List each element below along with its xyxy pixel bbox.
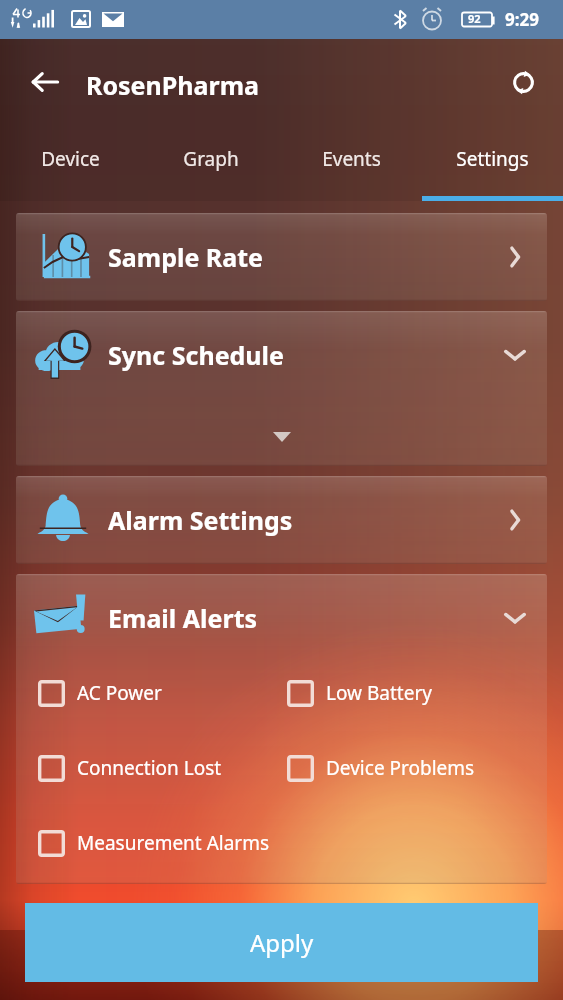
staticText: AC Power xyxy=(77,680,162,706)
button[interactable]: Select sync interval xyxy=(259,422,305,452)
button[interactable]: Apply xyxy=(25,903,538,982)
button[interactable]: Back xyxy=(22,59,68,105)
staticText: Measurement Alarms xyxy=(77,830,270,856)
staticText: Alarm Settings xyxy=(108,503,489,537)
staticText: Email Alerts xyxy=(108,601,489,635)
button[interactable]: Connection Lost xyxy=(38,743,287,793)
staticText: Events xyxy=(322,146,381,172)
staticText: 92 xyxy=(468,11,481,26)
staticText: Device xyxy=(41,146,100,172)
staticText: Device Problems xyxy=(326,755,475,781)
button[interactable]: Refresh xyxy=(500,59,546,105)
button[interactable]: Graph xyxy=(140,126,281,201)
button[interactable]: Events xyxy=(281,126,422,201)
button[interactable]: Measurement Alarms xyxy=(38,818,537,868)
button[interactable]: Settings xyxy=(422,126,563,201)
button[interactable]: Sync Schedule xyxy=(16,311,547,399)
staticText: 9:29 xyxy=(505,8,539,31)
button[interactable]: Low Battery xyxy=(287,668,537,718)
button[interactable]: Email Alerts xyxy=(16,574,547,662)
button[interactable]: Sample Rate xyxy=(16,213,547,301)
staticText: Sync Schedule xyxy=(108,338,489,372)
staticText: Low Battery xyxy=(326,680,432,706)
button[interactable]: AC Power xyxy=(38,668,287,718)
staticText: RosenPharma xyxy=(86,68,260,102)
staticText: Settings xyxy=(456,146,529,172)
button[interactable]: Device Problems xyxy=(287,743,537,793)
staticText: Graph xyxy=(183,146,239,172)
button[interactable]: Device xyxy=(0,126,140,201)
button[interactable]: Alarm Settings xyxy=(16,476,547,564)
staticText: Apply xyxy=(250,926,314,959)
staticText: Sample Rate xyxy=(108,240,489,274)
staticText: Connection Lost xyxy=(77,755,222,781)
